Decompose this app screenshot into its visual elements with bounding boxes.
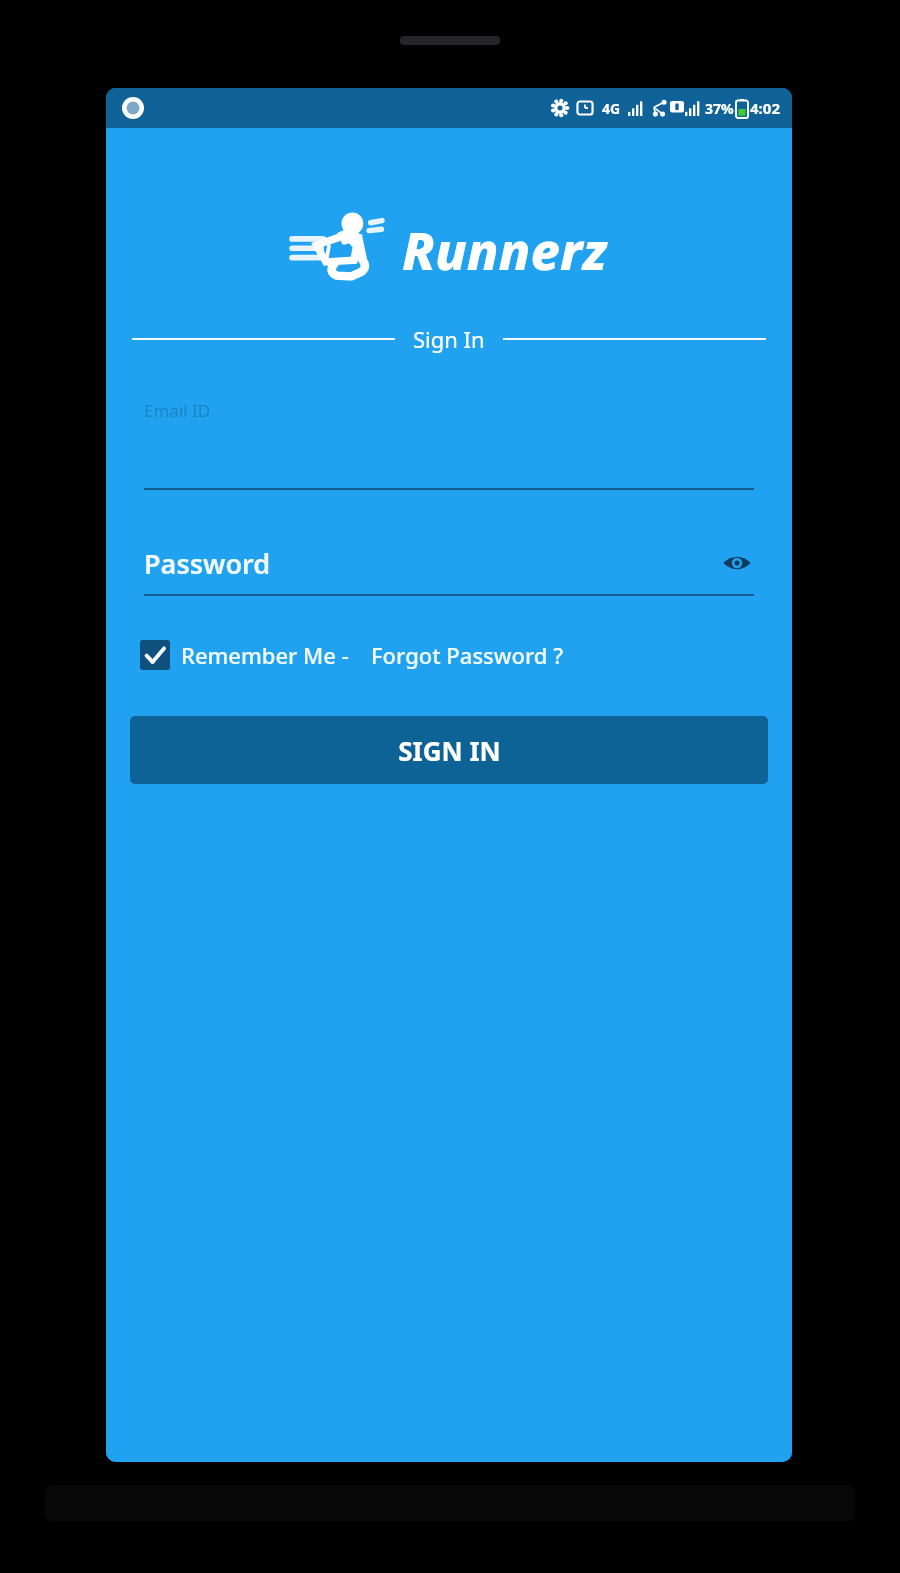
button[interactable]: Show password (720, 546, 754, 580)
button[interactable]: Password (144, 542, 754, 584)
staticText: Remember Me - (181, 640, 349, 670)
staticText: Runnerz (402, 214, 608, 285)
staticText: 37% (705, 99, 734, 118)
staticText: SIGN IN (398, 733, 501, 768)
staticText: Email ID (144, 399, 211, 422)
staticText: 4:02 (750, 98, 780, 118)
staticText: Forgot Password ? (371, 640, 564, 670)
staticText: Password (144, 545, 720, 582)
staticText: Sign In (413, 324, 485, 354)
button[interactable]: SIGN IN (130, 716, 768, 784)
staticText: 4G (602, 99, 621, 118)
button[interactable]: Remember Me - (140, 640, 349, 670)
button[interactable]: Forgot Password ? (371, 640, 564, 670)
button[interactable]: Email ID (144, 399, 754, 490)
